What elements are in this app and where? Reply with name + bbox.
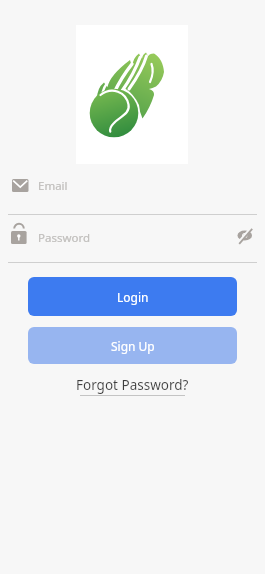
- button[interactable]: [237, 227, 253, 244]
- button[interactable]: Email: [0, 172, 265, 214]
- button[interactable]: Password: [0, 220, 265, 262]
- button[interactable]: Sign Up: [28, 327, 237, 364]
- staticText: Login: [117, 289, 149, 305]
- staticText: Password: [38, 230, 91, 246]
- button[interactable]: Login: [28, 277, 237, 316]
- staticText: Sign Up: [111, 338, 155, 354]
- button[interactable]: Forgot Password?: [76, 376, 189, 394]
- staticText: Email: [38, 178, 68, 194]
